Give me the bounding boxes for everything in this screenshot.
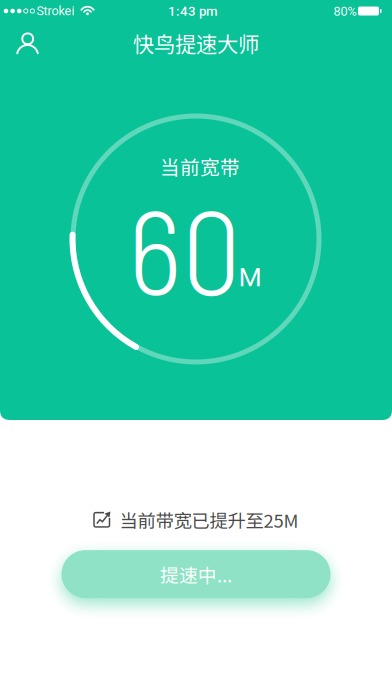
button[interactable]: 提速中... <box>61 550 330 598</box>
staticText: 当前宽带 <box>160 152 240 181</box>
button[interactable]: 当前带宽已提升至25M <box>93 506 298 533</box>
staticText: 提速中... <box>160 560 232 588</box>
staticText: 80% <box>333 4 356 19</box>
staticText: 快鸟提速大师 <box>133 27 259 58</box>
staticText: 当前带宽已提升至25M <box>119 506 298 533</box>
staticText: M <box>238 261 261 293</box>
staticText: Strokei <box>36 3 74 18</box>
staticText: 1:43 pm <box>168 3 218 19</box>
staticText: 60 <box>128 178 241 319</box>
button[interactable]: Profile <box>0 20 56 64</box>
